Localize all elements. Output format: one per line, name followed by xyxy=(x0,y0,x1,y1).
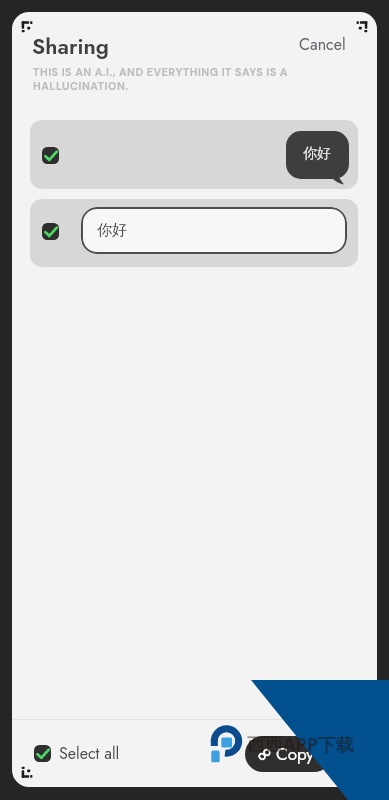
staticText: 西西APP下载 xyxy=(247,732,354,757)
button[interactable]: Cancel xyxy=(295,31,350,58)
button[interactable]: Link xyxy=(245,736,332,772)
staticText: 你好 xyxy=(303,145,331,163)
button[interactable]: Selected xyxy=(42,147,59,164)
other: Link xyxy=(258,748,271,761)
staticText: Sharing xyxy=(32,30,109,62)
button[interactable]: Selected xyxy=(34,745,51,762)
button[interactable]: Selected xyxy=(30,738,126,769)
staticText: Cancel xyxy=(299,33,346,56)
button[interactable]: Selected xyxy=(30,120,358,189)
staticText: Select all xyxy=(59,742,120,765)
staticText: 你好 xyxy=(97,221,127,240)
button[interactable]: Selected xyxy=(30,199,358,267)
button[interactable]: Selected xyxy=(42,223,59,240)
staticText: THIS IS AN A.I., AND EVERYTHING IT SAYS … xyxy=(33,65,295,94)
staticText: Copy xyxy=(276,742,314,767)
